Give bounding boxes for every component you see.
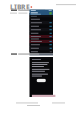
staticText: LIBRE — [10, 3, 30, 11]
